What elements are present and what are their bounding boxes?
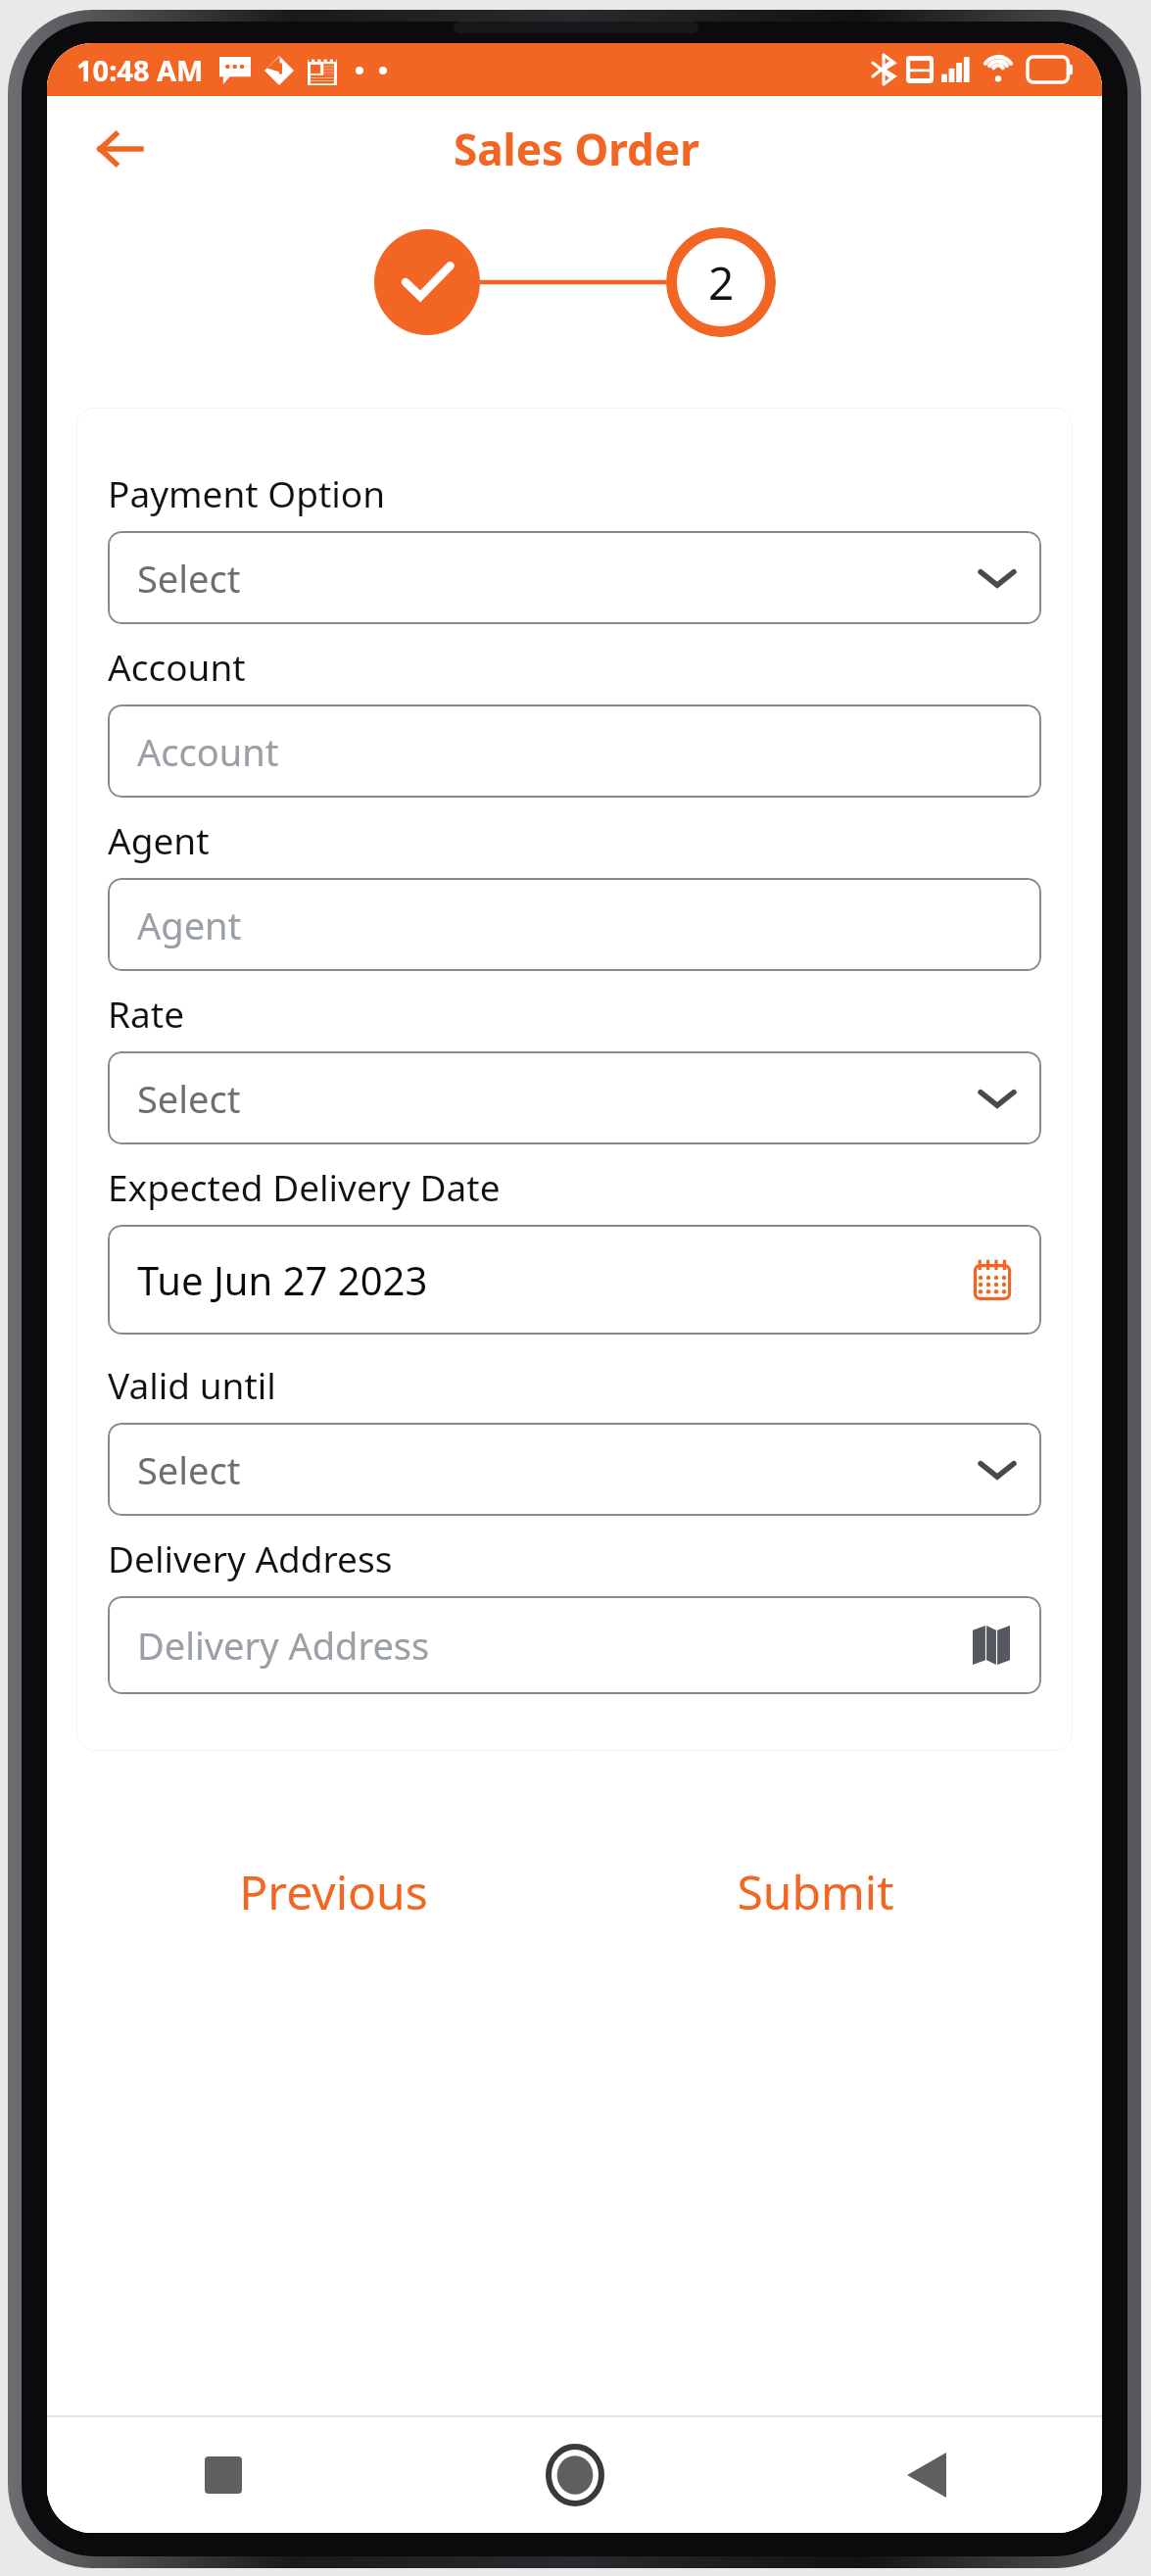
staticText: Account [108,642,246,691]
staticText: Valid until [108,1360,276,1409]
button[interactable]: Select [108,531,1041,624]
staticText: Payment Option [108,468,386,517]
staticText: Delivery Address [108,1533,393,1582]
button[interactable]: Back [84,114,155,184]
staticText: Expected Delivery Date [108,1162,501,1211]
staticText: Select [137,1444,241,1495]
button[interactable]: Recent apps [47,2417,399,2533]
button[interactable]: Step 1 completed [374,229,480,335]
button[interactable]: Open map [969,1623,1014,1668]
staticText: Account [137,726,279,777]
staticText: Agent [108,815,210,864]
staticText: Select [137,1073,241,1124]
staticText: Sales Order [454,120,699,178]
button[interactable]: Select [108,1423,1041,1516]
button[interactable]: Agent [108,878,1041,971]
button[interactable]: Submit [594,1844,1037,1939]
staticText: Rate [108,989,184,1038]
staticText: Select [137,553,241,604]
staticText: 2 [708,252,735,314]
button[interactable]: Previous [112,1844,554,1939]
button[interactable]: Account [108,705,1041,798]
button[interactable]: Step 2 current [666,227,776,337]
staticText: Agent [137,899,242,950]
staticText: 10:48 AM [76,51,204,89]
button[interactable]: Delivery Address [108,1596,1041,1694]
button[interactable]: Back [750,2417,1102,2533]
staticText: Tue Jun 27 2023 [137,1253,428,1306]
button[interactable]: Pick date [969,1256,1016,1303]
staticText: Delivery Address [137,1620,430,1671]
button[interactable]: Home [399,2417,750,2533]
staticText: Previous [239,1860,428,1923]
button[interactable]: Select [108,1051,1041,1144]
button[interactable]: Tue Jun 27 2023 [108,1225,1041,1335]
staticText: Submit [737,1860,894,1923]
